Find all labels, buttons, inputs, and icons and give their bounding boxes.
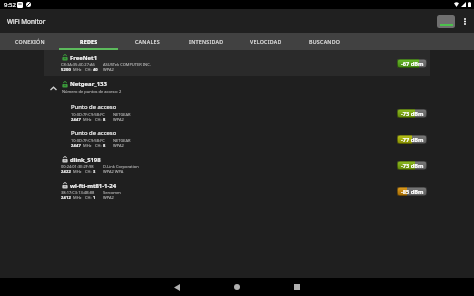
button[interactable]: wl-fti-mt81-1-24 bbox=[0, 178, 474, 204]
staticText: WPA2 bbox=[113, 117, 124, 122]
staticText: INTENSIDAD bbox=[189, 38, 224, 45]
staticText: C8:3A:35:4C:27:A6 bbox=[61, 62, 95, 67]
staticText: WPA2 bbox=[103, 67, 114, 72]
staticText: MHz bbox=[73, 195, 82, 200]
staticText: MHz bbox=[73, 169, 82, 174]
staticText: NETGEAR bbox=[113, 138, 131, 143]
staticText: 2412 bbox=[61, 195, 72, 200]
button[interactable]: -67 dBm bbox=[397, 59, 427, 68]
button[interactable]: FreeNet1 bbox=[0, 50, 474, 76]
staticText: MHz bbox=[83, 117, 92, 122]
staticText: 00:24:01:3E:2F:98 bbox=[61, 164, 94, 169]
staticText: WPA2 bbox=[113, 143, 124, 148]
staticText: CH: bbox=[95, 117, 102, 122]
button[interactable]: VELOCIDAD bbox=[236, 33, 295, 50]
staticText: WPA2 WPA bbox=[103, 169, 124, 174]
button[interactable]: Punto de acceso bbox=[0, 126, 474, 152]
button[interactable]: More options bbox=[460, 11, 470, 31]
staticText: VELOCIDAD bbox=[250, 38, 282, 45]
staticText: REDES bbox=[80, 38, 98, 45]
staticText: 38:17:C3:13:4B:88 bbox=[61, 190, 95, 195]
button[interactable]: -85 dBm bbox=[397, 187, 427, 196]
staticText: CONEXIÓN bbox=[15, 38, 45, 45]
staticText: 9:52 bbox=[4, 1, 16, 9]
staticText: CH: bbox=[95, 143, 102, 148]
staticText: 2447 bbox=[71, 143, 82, 148]
button[interactable]: -73 dBm bbox=[397, 109, 427, 118]
staticText: 2422 bbox=[61, 169, 72, 174]
staticText: 5200 bbox=[61, 67, 72, 72]
staticText: CH: bbox=[85, 67, 92, 72]
button[interactable]: -73 dBm bbox=[397, 161, 427, 170]
other: Collapse group bbox=[50, 86, 57, 91]
staticText: MHz bbox=[83, 143, 92, 148]
staticText: WPA2 bbox=[103, 195, 114, 200]
button[interactable]: CANALES bbox=[118, 33, 177, 50]
staticText: -85 dBm bbox=[401, 188, 424, 196]
staticText: Número de puntos de acceso: 2 bbox=[62, 89, 122, 94]
button[interactable]: Recent apps bbox=[282, 278, 312, 296]
staticText: 3 bbox=[93, 169, 96, 174]
staticText: D-Link Corporation bbox=[103, 164, 139, 169]
button[interactable]: Back bbox=[162, 278, 192, 296]
button[interactable]: dlink_S198 bbox=[0, 152, 474, 178]
staticText: Punto de acceso bbox=[71, 103, 117, 111]
staticText: 1 bbox=[93, 195, 96, 200]
staticText: ASUSTek COMPUTER INC. bbox=[103, 62, 151, 67]
staticText: CH: bbox=[85, 195, 92, 200]
button[interactable]: BUSCANDO bbox=[295, 33, 354, 50]
button[interactable]: Signal level meter bbox=[437, 15, 455, 28]
staticText: 40 bbox=[93, 67, 98, 72]
staticText: wl-fti-mt81-1-24 bbox=[70, 182, 117, 190]
staticText: -73 dBm bbox=[401, 110, 424, 118]
button[interactable]: CONEXIÓN bbox=[0, 33, 59, 50]
button[interactable]: Collapse group bbox=[0, 76, 474, 100]
button[interactable]: -77 dBm bbox=[397, 135, 427, 144]
staticText: BUSCANDO bbox=[309, 38, 341, 45]
staticText: CH: bbox=[85, 169, 92, 174]
button[interactable]: Punto de acceso bbox=[0, 100, 474, 126]
staticText: FreeNet1 bbox=[70, 54, 98, 62]
button[interactable]: REDES bbox=[59, 33, 118, 50]
staticText: -67 dBm bbox=[401, 60, 424, 68]
staticText: 10:0D:7F:C9:5B:FC bbox=[71, 112, 105, 117]
button[interactable]: Home bbox=[222, 278, 252, 296]
staticText: NETGEAR bbox=[113, 112, 131, 117]
staticText: Netgear_133 bbox=[70, 80, 107, 88]
staticText: -77 dBm bbox=[401, 136, 424, 144]
staticText: CANALES bbox=[135, 38, 160, 45]
staticText: -73 dBm bbox=[401, 162, 424, 170]
staticText: 2447 bbox=[71, 117, 82, 122]
staticText: 8 bbox=[103, 143, 106, 148]
button[interactable]: INTENSIDAD bbox=[177, 33, 236, 50]
staticText: dlink_S198 bbox=[70, 156, 101, 164]
staticText: 8 bbox=[103, 117, 106, 122]
staticText: 10:0D:7F:C9:5B:FC bbox=[71, 138, 105, 143]
staticText: Punto de acceso bbox=[71, 129, 117, 137]
staticText: MHz bbox=[73, 67, 82, 72]
staticText: Sercomm bbox=[103, 190, 121, 195]
staticText: WiFi Monitor bbox=[7, 17, 46, 26]
